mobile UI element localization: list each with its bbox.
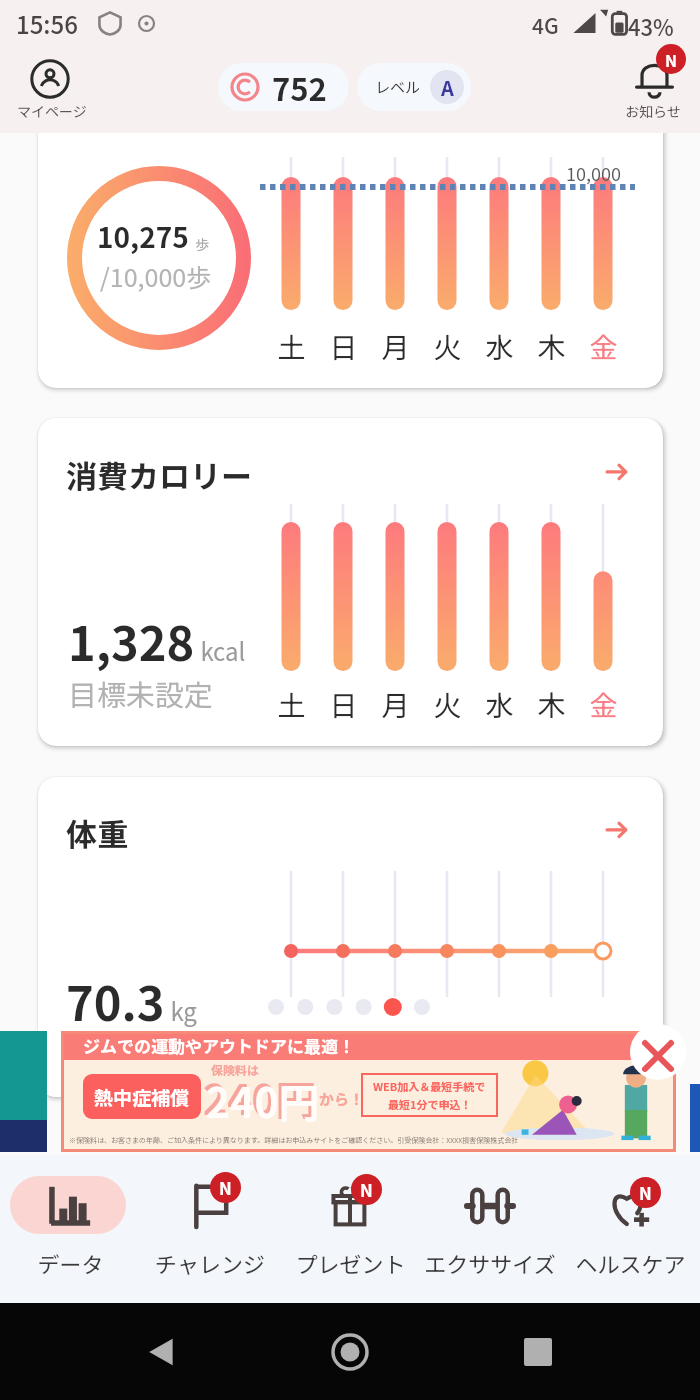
staticText: N — [360, 1177, 373, 1202]
staticText: 歩 — [189, 234, 210, 254]
staticText: 消費カロリー — [66, 452, 252, 497]
staticText: チャレンジ — [155, 1247, 265, 1279]
staticText: 体重 — [66, 810, 128, 855]
staticText: 4G — [532, 10, 559, 40]
button[interactable]: N — [560, 1155, 700, 1303]
staticText: 15:56 — [16, 6, 78, 41]
staticText: お知らせ — [625, 101, 681, 121]
button[interactable]: N — [140, 1155, 280, 1303]
button[interactable]: 消費カロリー — [38, 418, 663, 746]
staticText: 最短1分で申込！ — [388, 1096, 472, 1112]
staticText: 10,000 — [566, 160, 621, 186]
button[interactable]: 10,275 — [38, 120, 663, 388]
button[interactable]: レベル — [375, 63, 464, 111]
staticText: 月 — [381, 326, 410, 367]
button[interactable]: マイページ — [10, 46, 96, 133]
staticText: A — [441, 73, 454, 102]
staticText: 保険料は — [211, 1061, 260, 1078]
staticText: 目標未設定 — [68, 672, 214, 714]
staticText: 火 — [433, 326, 462, 367]
staticText: 月 — [381, 684, 410, 725]
staticText: ジムでの運動やアウトドアに最適！ — [83, 1033, 355, 1058]
staticText: kg — [165, 993, 197, 1028]
staticText: 1,328 — [68, 606, 195, 674]
staticText: 火 — [433, 684, 462, 725]
staticText: マイページ — [17, 101, 87, 121]
staticText: 日 — [329, 684, 358, 725]
staticText: プレゼント — [295, 1247, 406, 1279]
staticText: N — [665, 48, 677, 71]
button[interactable]: データ — [0, 1155, 140, 1303]
staticText: 240円 — [206, 1070, 320, 1129]
staticText: ヘルスケア — [575, 1247, 686, 1279]
button[interactable]: Home — [325, 1327, 375, 1377]
staticText: 木 — [537, 684, 566, 725]
staticText: 43% — [628, 10, 674, 42]
button[interactable]: エクササイズ — [420, 1155, 560, 1303]
staticText: から！ — [319, 1088, 365, 1110]
button[interactable]: Back — [138, 1327, 188, 1377]
button[interactable]: 752 — [230, 63, 327, 111]
button[interactable]: 体重 — [38, 777, 663, 1097]
button[interactable]: 詳細 — [606, 461, 627, 482]
staticText: 10,275 — [97, 216, 189, 257]
staticText: 日 — [329, 326, 358, 367]
staticText: ※保険料は、お客さまの年齢、ご加入条件により異なります。詳細はお申込みサイトをご… — [69, 1135, 519, 1145]
staticText: 金 — [589, 326, 618, 367]
staticText: 金 — [589, 684, 618, 725]
staticText: kcal — [195, 633, 246, 668]
button[interactable]: 詳細 — [606, 819, 627, 840]
staticText: WEB加入＆最短手続で — [373, 1078, 486, 1094]
staticText: 土 — [277, 326, 306, 367]
button[interactable]: 閉じる — [630, 1024, 686, 1080]
staticText: N — [639, 1180, 652, 1205]
button[interactable]: Recents — [513, 1327, 563, 1377]
staticText: 752 — [272, 65, 327, 110]
staticText: N — [219, 1175, 232, 1200]
staticText: 木 — [537, 326, 566, 367]
staticText: 240円 — [203, 1067, 317, 1126]
staticText: 水 — [485, 684, 514, 725]
button[interactable]: N — [280, 1155, 420, 1303]
button[interactable]: ジムでの運動やアウトドアに最適！ — [61, 1031, 676, 1152]
staticText: 70.3 — [66, 966, 165, 1034]
staticText: /10,000歩 — [100, 258, 212, 294]
staticText: 水 — [485, 326, 514, 367]
staticText: データ — [37, 1247, 104, 1279]
staticText: エクササイズ — [424, 1247, 556, 1279]
staticText: 熱中症補償 — [94, 1083, 190, 1111]
button[interactable]: お知らせ — [614, 46, 700, 133]
staticText: レベル — [375, 76, 421, 98]
staticText: 土 — [277, 684, 306, 725]
